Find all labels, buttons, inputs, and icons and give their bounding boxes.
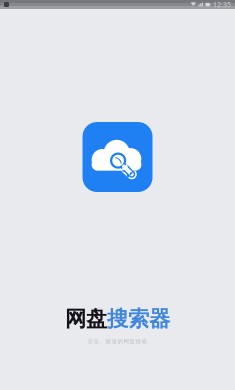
- staticText: 12:35: [213, 0, 231, 9]
- staticText: 搜索器: [107, 306, 170, 332]
- staticText: 安全、极速的网盘搜索: [87, 338, 147, 345]
- staticText: 网盘: [65, 306, 107, 332]
